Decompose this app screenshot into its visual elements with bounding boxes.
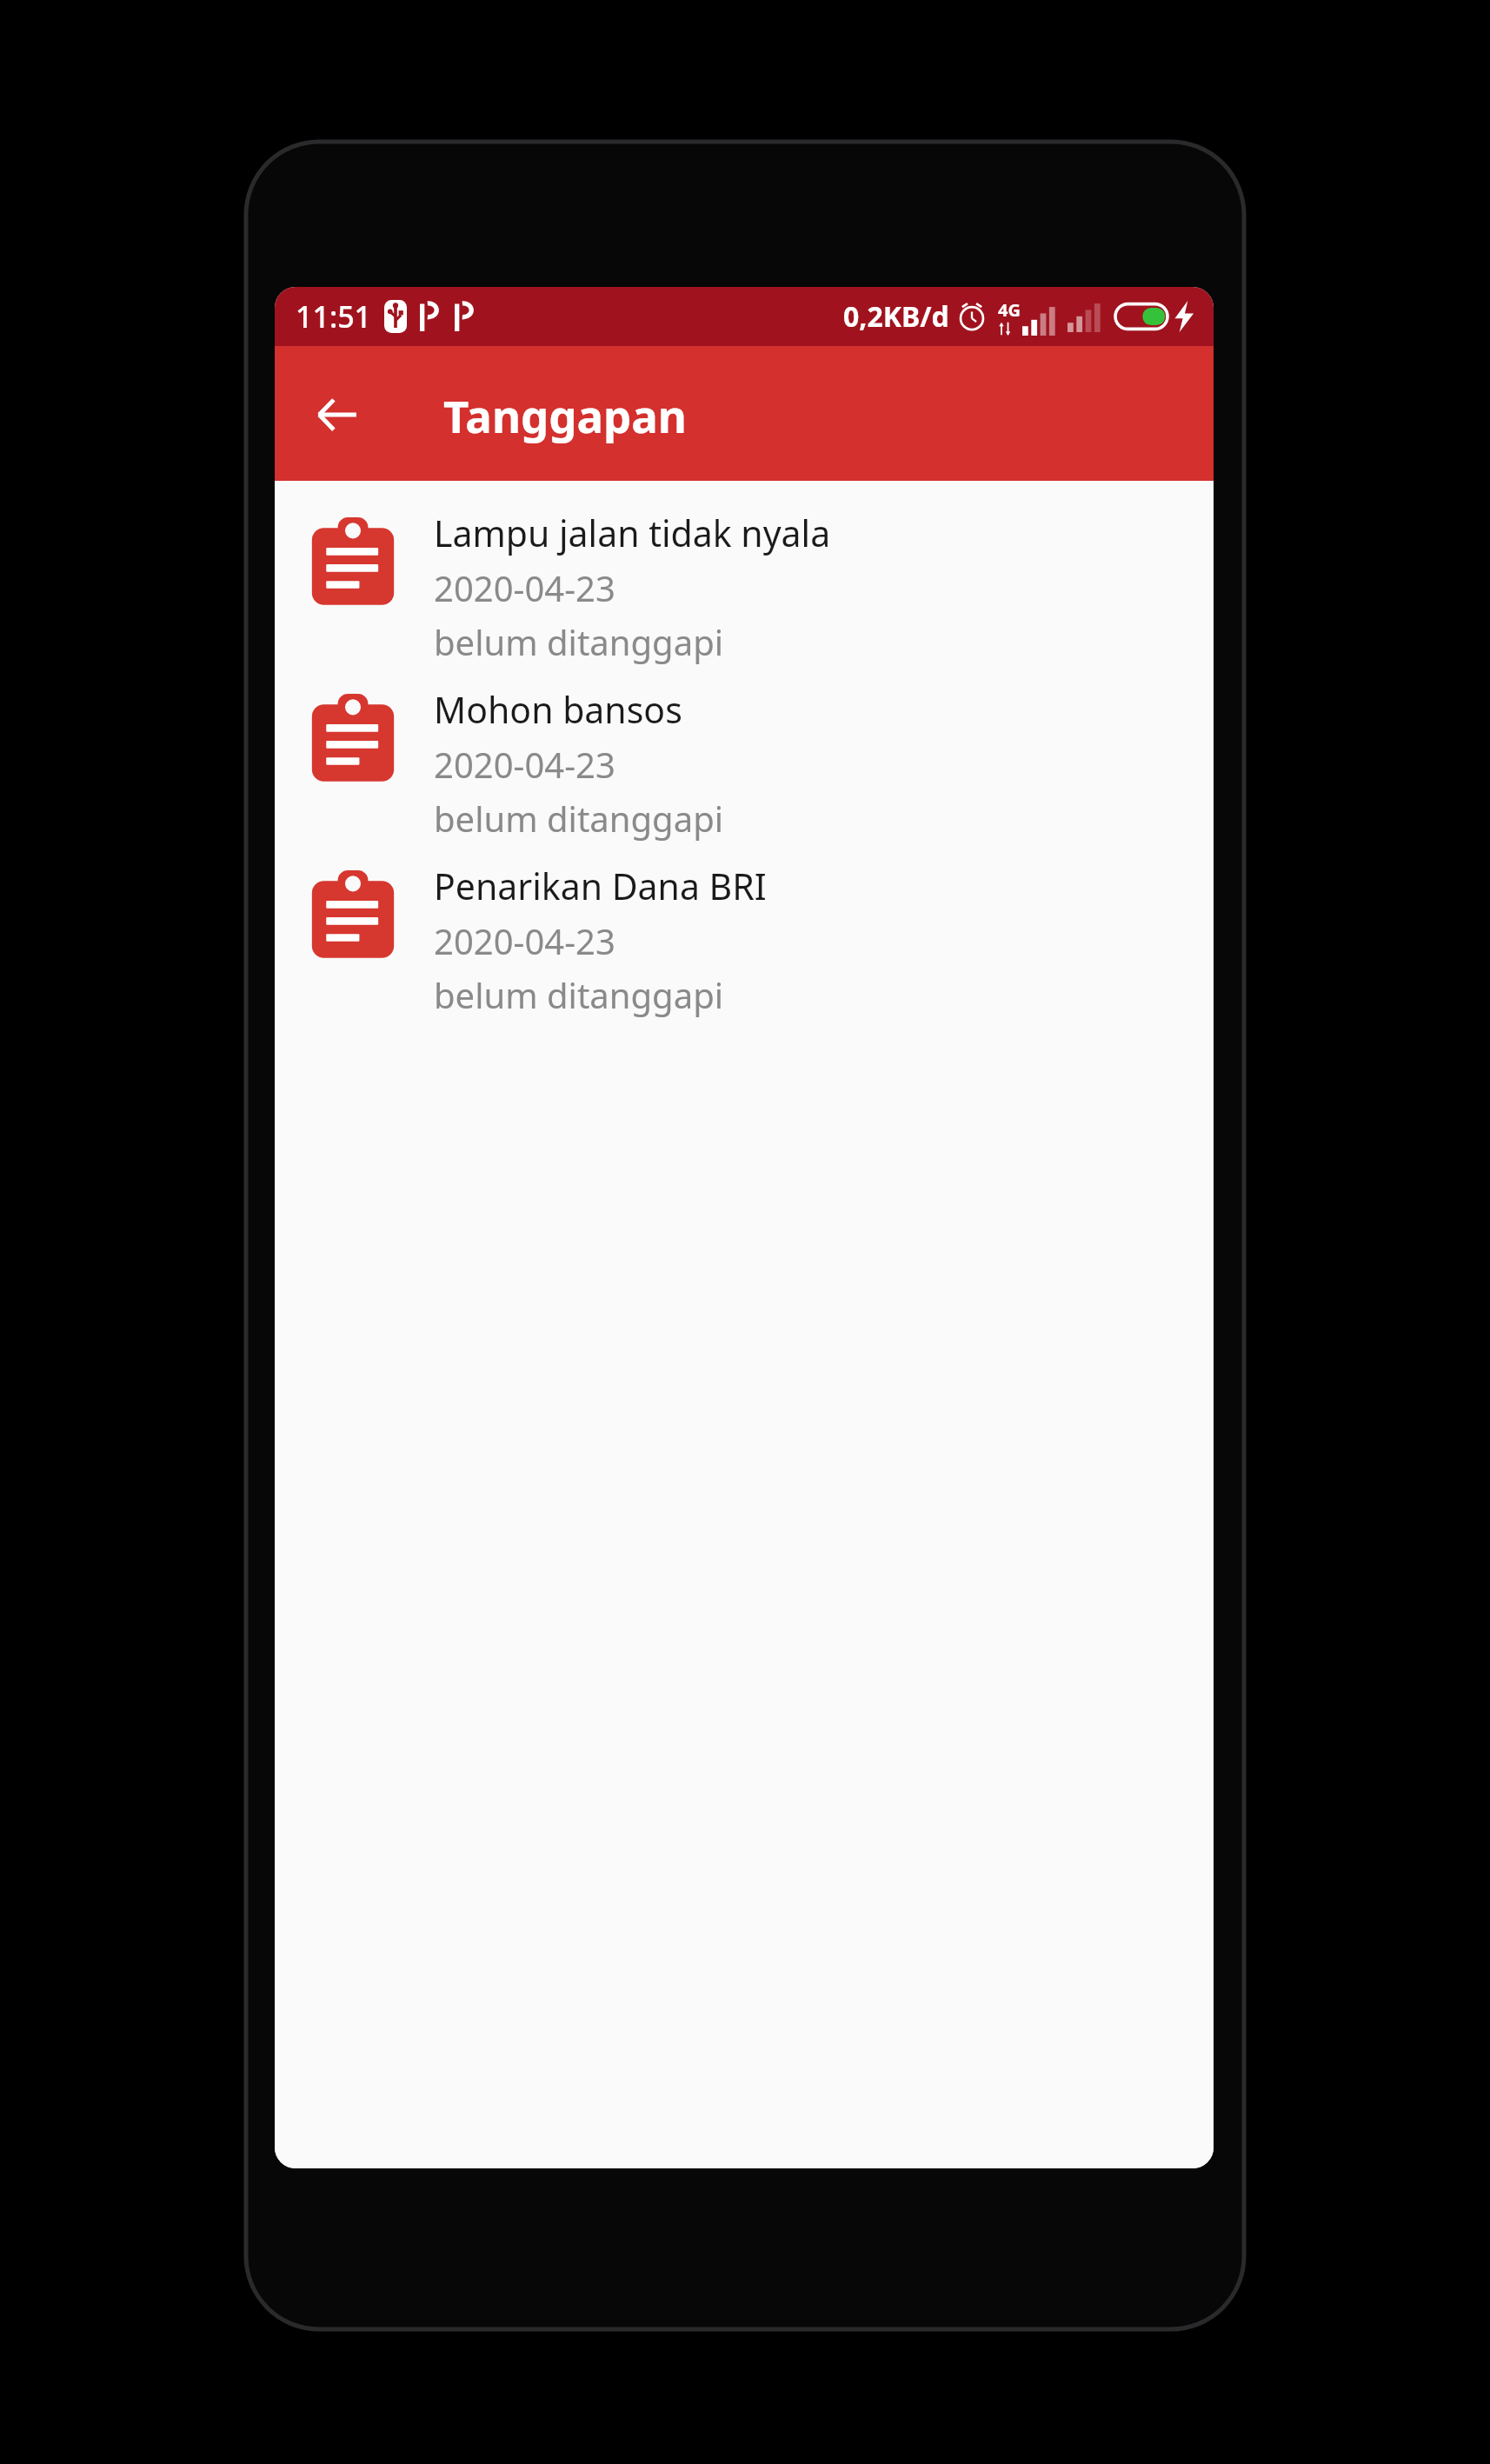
staticText: 2020-04-23 xyxy=(434,741,615,788)
staticText: belum ditanggapi xyxy=(434,618,724,665)
staticText: 11:51 xyxy=(296,296,372,336)
staticText: 2020-04-23 xyxy=(434,564,615,611)
button[interactable]: Mohon bansos xyxy=(275,680,1214,856)
button[interactable]: Back xyxy=(294,371,379,456)
button[interactable]: Lampu jalan tidak nyala xyxy=(275,503,1214,680)
staticText: belum ditanggapi xyxy=(434,971,724,1018)
staticText: Penarikan Dana BRI xyxy=(434,862,767,910)
staticText: 4G xyxy=(998,298,1021,322)
button[interactable]: Penarikan Dana BRI xyxy=(275,856,1214,1033)
staticText: 0,2KB/d xyxy=(843,297,949,336)
staticText: belum ditanggapi xyxy=(434,795,724,842)
staticText: Mohon bansos xyxy=(434,685,682,734)
staticText: 2020-04-23 xyxy=(434,917,615,964)
staticText: Lampu jalan tidak nyala xyxy=(434,509,831,557)
staticText: Tanggapan xyxy=(443,385,687,445)
